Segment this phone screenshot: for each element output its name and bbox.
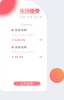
- staticText: ￥68.00: [11, 55, 23, 59]
- staticText: 户号 0123 4567: [11, 33, 35, 37]
- staticText: 国家电网: [15, 46, 27, 49]
- staticText: 立即缴费: [21, 82, 33, 85]
- staticText: 我的账单: [21, 23, 33, 26]
- staticText: 国家电网: [15, 28, 27, 32]
- staticText: ￥128.50: [11, 38, 25, 42]
- staticText: 水费·电费·燃气费: [19, 15, 42, 19]
- staticText: 户号 0123 4567: [11, 50, 35, 54]
- staticText: 生活缴费: [19, 8, 39, 15]
- staticText: 缴费: [39, 56, 41, 58]
- button[interactable]: 立即缴费: [13, 81, 40, 86]
- staticText: 缴费: [39, 39, 41, 41]
